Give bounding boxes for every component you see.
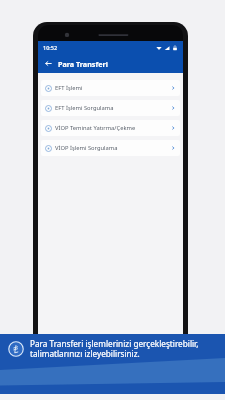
- staticText: EFT İşlemi: [55, 84, 170, 92]
- staticText: Para Transferi işlemlerinizi gerçekleşti…: [30, 338, 217, 360]
- button[interactable]: EFT İşlemi: [41, 80, 180, 96]
- button[interactable]: EFT İşlemi Sorgulama: [41, 100, 180, 116]
- button[interactable]: VİOP Teminat Yatırma/Çekme: [41, 120, 180, 136]
- staticText: 10:52: [43, 44, 58, 51]
- button[interactable]: Back: [42, 57, 55, 70]
- button[interactable]: VİOP İşlemi Sorgulama: [41, 140, 180, 156]
- staticText: VİOP İşlemi Sorgulama: [55, 144, 170, 152]
- staticText: Para Transferi: [58, 59, 108, 69]
- staticText: EFT İşlemi Sorgulama: [55, 104, 170, 112]
- staticText: VİOP Teminat Yatırma/Çekme: [55, 124, 170, 132]
